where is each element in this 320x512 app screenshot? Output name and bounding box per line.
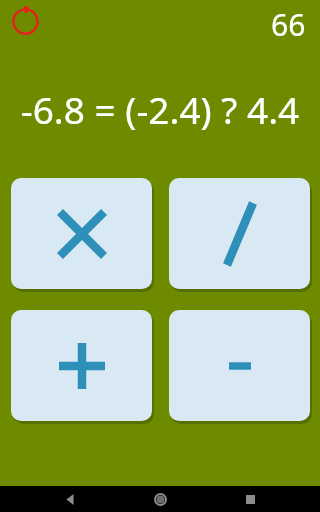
staticText: 66 <box>271 4 306 45</box>
button[interactable]: Timer <box>11 7 40 36</box>
button[interactable]: Subtract <box>169 310 310 421</box>
staticText: -6.8 = (-2.4) ? 4.4 <box>0 84 320 134</box>
button[interactable]: Home <box>140 486 180 512</box>
button[interactable]: Divide <box>169 178 310 289</box>
button[interactable]: Back <box>50 486 90 512</box>
button[interactable]: Recent apps <box>230 486 270 512</box>
button[interactable]: Add <box>11 310 152 421</box>
button[interactable]: Multiply <box>11 178 152 289</box>
